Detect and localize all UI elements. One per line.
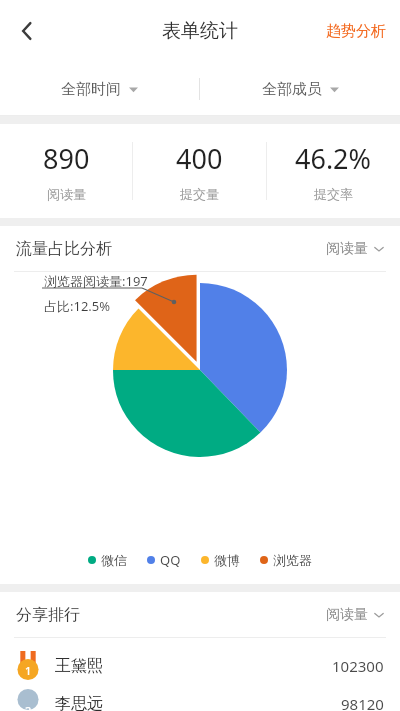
staticText: 全部时间: [61, 80, 121, 99]
button[interactable]: Back: [4, 8, 50, 54]
staticText: 阅读量: [326, 240, 368, 258]
staticText: 阅读量: [326, 606, 368, 624]
staticText: 102300: [332, 656, 384, 676]
staticText: 分享排行: [16, 605, 80, 625]
staticText: 占比:12.5%: [44, 297, 111, 315]
staticText: 王黛熙: [55, 656, 103, 676]
staticText: 阅读量: [47, 186, 86, 202]
button[interactable]: 1: [0, 638, 400, 694]
staticText: 微信: [101, 552, 127, 568]
staticText: 提交率: [314, 186, 353, 202]
staticText: 890: [43, 140, 90, 177]
button[interactable]: 趋势分析: [312, 10, 400, 53]
staticText: 浏览器: [273, 552, 312, 568]
staticText: 全部成员: [262, 80, 322, 99]
staticText: 提交量: [180, 186, 219, 202]
staticText: 2: [25, 703, 32, 711]
button[interactable]: 阅读量: [310, 232, 400, 266]
staticText: 46.2%: [295, 140, 372, 177]
button[interactable]: 全部成员: [200, 62, 400, 116]
staticText: 1: [25, 663, 32, 678]
staticText: 表单统计: [162, 19, 238, 43]
staticText: 400: [176, 140, 223, 177]
staticText: 微博: [214, 552, 240, 568]
button[interactable]: 2: [0, 694, 400, 711]
staticText: 趋势分析: [326, 22, 386, 41]
staticText: 流量占比分析: [16, 239, 112, 259]
staticText: 98120: [341, 694, 384, 711]
staticText: 浏览器阅读量:197: [44, 272, 148, 290]
button[interactable]: 全部时间: [0, 62, 199, 116]
staticText: 李思远: [55, 694, 103, 711]
button[interactable]: 阅读量: [310, 598, 400, 632]
staticText: QQ: [160, 551, 181, 569]
